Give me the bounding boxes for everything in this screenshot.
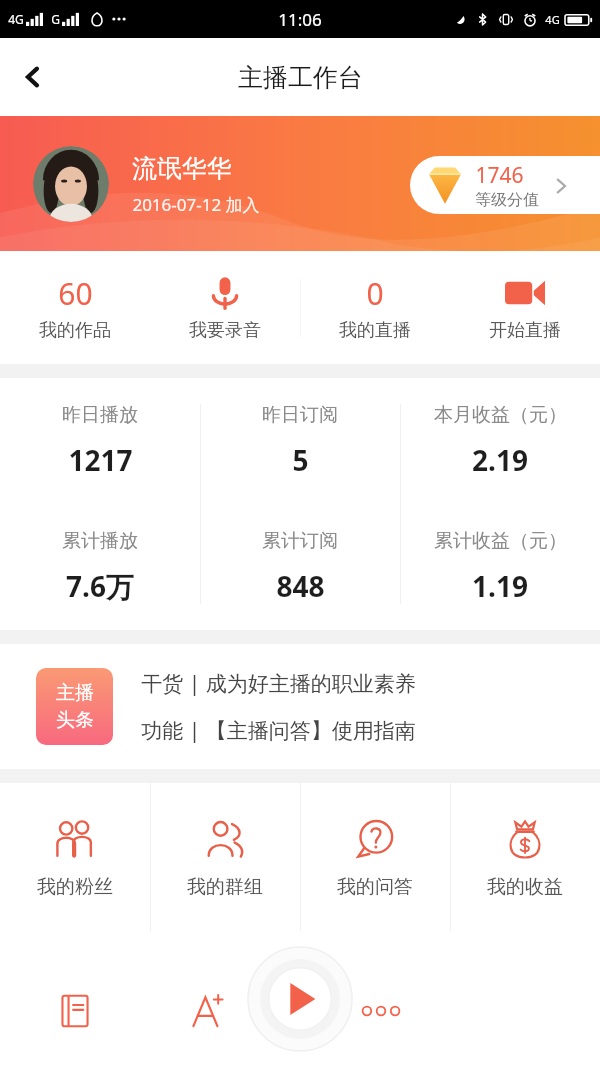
button[interactable]: 开始直播 (450, 251, 600, 364)
staticText: 0 (366, 273, 384, 313)
staticText: 头条 (56, 708, 94, 732)
button[interactable]: Book (0, 955, 150, 1067)
staticText: 60 (58, 273, 93, 313)
staticText: 我的直播 (339, 319, 411, 342)
staticText: 累计播放 (62, 529, 138, 553)
button[interactable]: 60 (0, 251, 150, 364)
staticText: 4G (545, 12, 560, 27)
button[interactable]: Text size (150, 955, 300, 1067)
staticText: 11:06 (278, 8, 322, 31)
staticText: 4G (8, 11, 24, 27)
staticText: 我的问答 (337, 875, 413, 899)
staticText: 1.19 (472, 567, 528, 605)
staticText: 主播 (56, 681, 94, 705)
button[interactable]: 我要录音 (150, 251, 300, 364)
button[interactable]: Back (0, 44, 66, 110)
staticText: 5 (292, 441, 309, 479)
staticText: 1746 (475, 161, 524, 190)
button[interactable]: 我的收益 (450, 783, 600, 931)
staticText: G (51, 11, 60, 27)
staticText: 昨日订阅 (262, 403, 338, 427)
button[interactable]: 本月收益（元） (400, 378, 600, 504)
staticText: 本月收益（元） (434, 403, 567, 427)
button[interactable]: Play (248, 947, 352, 1051)
staticText: 2016-07-12 加入 (132, 193, 260, 216)
staticText: 7.6万 (66, 567, 134, 605)
staticText: 848 (276, 567, 325, 605)
staticText: 累计订阅 (262, 529, 338, 553)
staticText: 干货 | 成为好主播的职业素养 (141, 669, 416, 698)
staticText: 我的粉丝 (37, 875, 113, 899)
button[interactable]: 1746 (410, 156, 600, 214)
button[interactable]: 我的群组 (150, 783, 300, 931)
staticText: 主播工作台 (238, 62, 363, 93)
staticText: 我的群组 (187, 875, 263, 899)
button[interactable]: 累计播放 (0, 504, 200, 630)
staticText: 我要录音 (189, 319, 261, 342)
button[interactable]: 我的问答 (300, 783, 450, 931)
staticText: 累计收益（元） (434, 529, 567, 553)
staticText: 我的收益 (487, 875, 563, 899)
button[interactable]: 0 (300, 251, 450, 364)
button[interactable]: More (300, 955, 450, 1067)
staticText: 开始直播 (489, 319, 561, 342)
staticText: 1217 (68, 441, 133, 479)
staticText: 昨日播放 (62, 403, 138, 427)
button[interactable]: 我的粉丝 (0, 783, 150, 931)
staticText: 2.19 (472, 441, 528, 479)
button[interactable]: 昨日订阅 (200, 378, 400, 504)
button[interactable]: 昨日播放 (0, 378, 200, 504)
staticText: 流氓华华 (132, 153, 232, 184)
staticText: 我的作品 (39, 319, 111, 342)
button[interactable]: 累计收益（元） (400, 504, 600, 630)
button[interactable]: 主播 (0, 644, 600, 769)
button[interactable]: Avatar (33, 146, 109, 222)
staticText: 等级分值 (475, 190, 539, 210)
staticText: 功能 | 【主播问答】使用指南 (141, 716, 416, 745)
button[interactable]: 累计订阅 (200, 504, 400, 630)
